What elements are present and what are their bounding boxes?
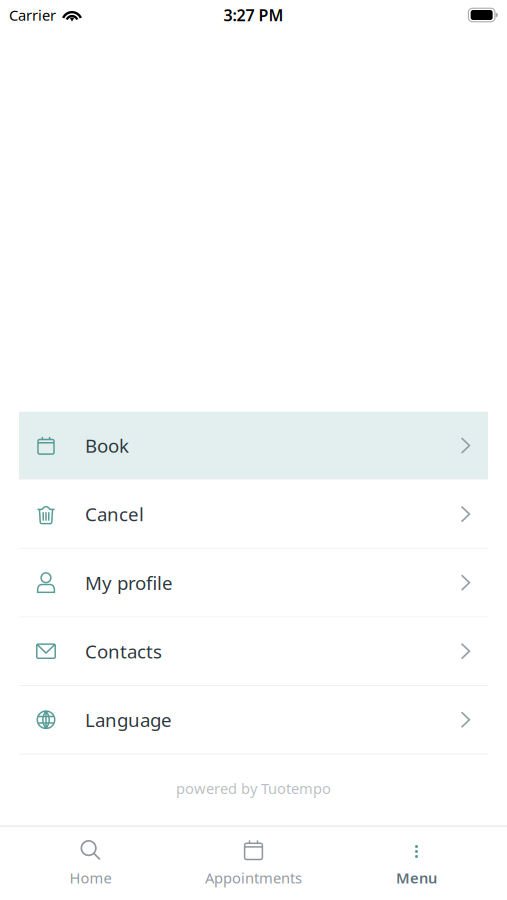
staticText: Book [85, 433, 129, 458]
staticText: Menu [396, 868, 437, 887]
button[interactable]: Language [0, 686, 507, 753]
button[interactable]: My profile [0, 549, 507, 616]
staticText: Carrier [9, 5, 56, 25]
button[interactable]: Menu [335, 839, 498, 887]
button[interactable]: Cancel [0, 480, 507, 548]
button[interactable]: Contacts [0, 617, 507, 685]
staticText: Home [69, 868, 111, 887]
staticText: My profile [85, 570, 173, 595]
staticText: Contacts [85, 639, 162, 664]
staticText: Cancel [85, 502, 144, 526]
button[interactable]: Book [0, 412, 507, 479]
button[interactable]: Appointments [172, 839, 335, 887]
staticText: Appointments [205, 868, 302, 887]
button[interactable]: Home [9, 839, 172, 887]
staticText: powered by Tuotempo [176, 778, 331, 798]
staticText: Language [85, 707, 172, 732]
staticText: 3:27 PM [223, 4, 283, 26]
